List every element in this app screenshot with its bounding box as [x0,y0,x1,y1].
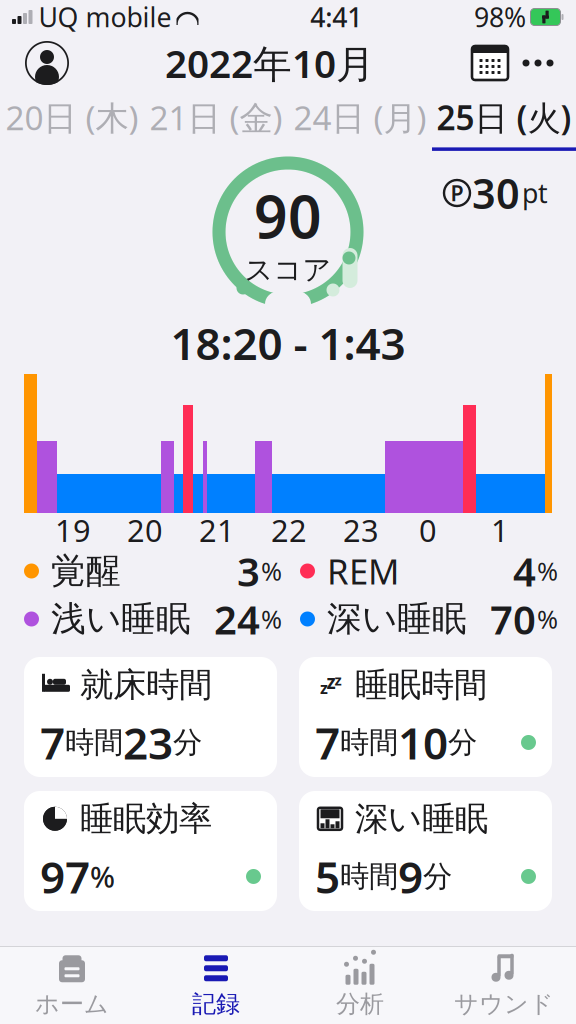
staticText: 18:20 - 1:43 [170,314,405,372]
button[interactable]: More [510,41,566,85]
staticText: 深い睡眠 [355,798,488,839]
button[interactable]: 24日 (月) [288,92,432,146]
staticText: 23 [343,510,379,550]
staticText: 浅い睡眠 [51,598,191,640]
staticText: 21 [199,510,235,550]
staticText: 9 [398,847,423,906]
staticText: 20 [127,510,163,550]
button[interactable]: 分析 [288,946,432,1024]
staticText: 記録 [192,989,240,1019]
staticText: 時間 [340,724,398,760]
staticText: 深い睡眠 [327,598,467,640]
staticText: z [320,677,328,698]
staticText: 分 [448,724,477,760]
staticText: % [261,602,282,636]
staticText: 4 [513,544,536,597]
staticText: 25日 (火) [436,95,571,139]
staticText: 0 [419,510,437,550]
staticText: 睡眠時間 [355,664,487,705]
staticText: UQ mobile [38,0,171,35]
staticText: P [450,179,463,207]
staticText: REM [327,548,399,594]
staticText: z [326,669,335,694]
button[interactable]: 25日 (火) [432,92,576,146]
button[interactable]: 記録 [144,946,288,1024]
staticText: 21日 (金) [149,95,282,139]
button[interactable]: Calendar [470,44,510,82]
staticText: % [537,554,558,588]
staticText: 就床時間 [80,664,212,705]
staticText: 19 [55,510,91,550]
staticText: 20日 (木) [5,95,138,139]
staticText: 5 [315,847,340,906]
staticText: % [261,554,282,588]
staticText: 睡眠効率 [80,798,212,839]
staticText: 時間 [340,858,398,894]
button[interactable]: 睡眠効率 [24,791,277,911]
button[interactable]: ホーム [0,946,144,1024]
staticText: 4:41 [310,0,362,35]
staticText: 24 [214,592,260,645]
staticText: 分 [173,724,202,760]
staticText: 30 [472,166,520,220]
staticText: 覚醒 [51,550,121,592]
staticText: スコア [244,253,331,287]
button[interactable]: 20日 (木) [0,92,144,146]
staticText: 1 [491,510,509,550]
staticText: 2022年10月 [165,37,375,89]
staticText: % [537,602,558,636]
staticText: 時間 [65,724,123,760]
staticText: % [90,857,115,896]
staticText: 10 [398,713,448,772]
staticText: 3 [237,544,260,597]
staticText: 分析 [336,989,384,1019]
staticText: 70 [490,592,536,645]
staticText: 90 [254,177,322,255]
staticText: z [334,670,341,689]
button[interactable]: Profile [24,40,70,86]
staticText: pt [522,175,548,211]
staticText: サウンド [454,989,554,1019]
button[interactable]: z [299,657,552,777]
button[interactable]: サウンド [432,946,576,1024]
staticText: 98% [474,0,526,35]
staticText: 7 [40,713,65,772]
button[interactable]: 就床時間 [24,657,277,777]
button[interactable]: 深い睡眠 [299,791,552,911]
staticText: 22 [271,510,307,550]
button[interactable]: 21日 (金) [144,92,288,146]
staticText: 分 [423,858,452,894]
staticText: 7 [315,713,340,772]
staticText: ホーム [35,989,109,1019]
staticText: 23 [123,713,173,772]
staticText: 24日 (月) [293,95,426,139]
staticText: 97 [40,847,90,906]
